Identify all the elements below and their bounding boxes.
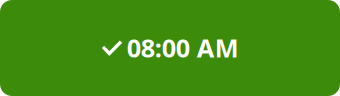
button[interactable]: 08:00 AM (0, 0, 340, 96)
staticText: 08:00 AM (127, 31, 239, 64)
